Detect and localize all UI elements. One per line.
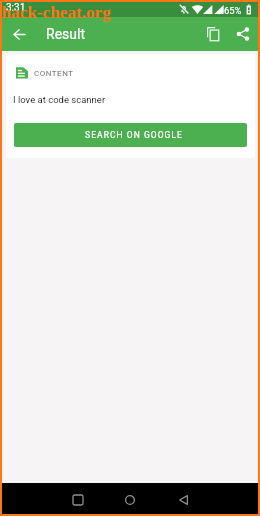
staticText: 3:31 xyxy=(6,2,26,14)
button[interactable]: Back xyxy=(172,488,195,511)
button[interactable]: Recents xyxy=(66,488,89,511)
staticText: SEARCH ON GOOGLE xyxy=(85,130,183,140)
button[interactable]: Share xyxy=(228,17,258,51)
staticText: hack-cheat.org xyxy=(2,3,112,22)
staticText: CONTENT xyxy=(34,69,74,78)
staticText: Result xyxy=(46,26,85,42)
staticText: 65% xyxy=(224,5,242,16)
button[interactable]: Back xyxy=(2,17,36,51)
staticText: I love at code scanner xyxy=(13,94,106,105)
button[interactable]: Home xyxy=(118,488,141,511)
button[interactable]: SEARCH ON GOOGLE xyxy=(14,123,247,147)
button[interactable]: Copy xyxy=(198,17,228,51)
